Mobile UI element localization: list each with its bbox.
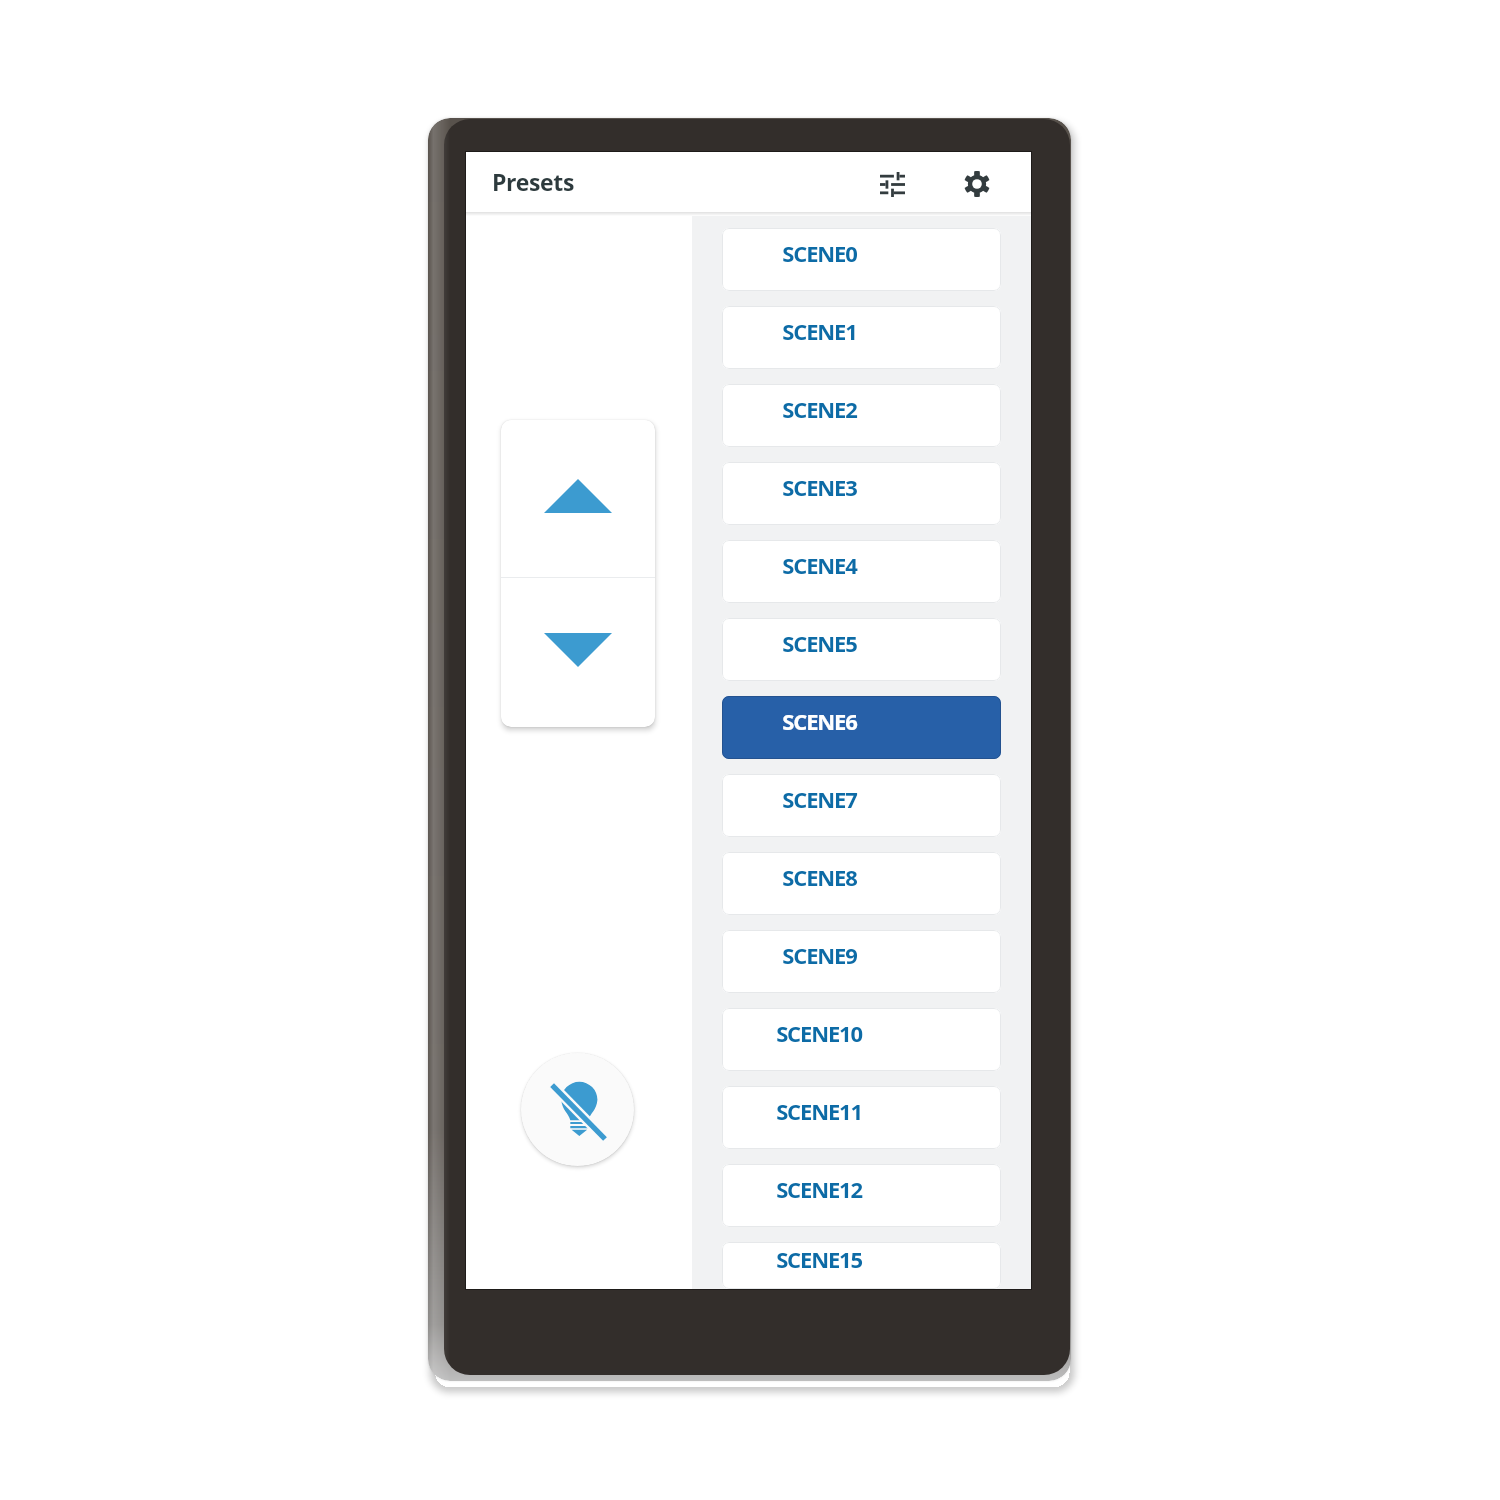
staticText: SCENE5 — [782, 628, 857, 658]
staticText: SCENE3 — [782, 472, 857, 502]
button[interactable]: Next preset — [501, 578, 655, 727]
button[interactable]: SCENE8 — [722, 852, 1001, 915]
staticText: Presets — [492, 166, 575, 197]
button[interactable]: SCENE4 — [722, 540, 1001, 603]
button[interactable]: SCENE12 — [722, 1164, 1001, 1227]
button[interactable]: SCENE7 — [722, 774, 1001, 837]
button[interactable]: SCENE10 — [722, 1008, 1001, 1071]
staticText: SCENE6 — [782, 706, 857, 736]
staticText: SCENE11 — [776, 1096, 862, 1126]
staticText: SCENE7 — [782, 784, 857, 814]
staticText: SCENE0 — [782, 238, 857, 268]
staticText: SCENE12 — [776, 1174, 862, 1204]
staticText: SCENE15 — [776, 1244, 862, 1274]
button[interactable]: Tune — [864, 156, 920, 212]
button[interactable]: Lights off — [521, 1053, 634, 1166]
staticText: SCENE4 — [782, 550, 857, 580]
button[interactable]: Settings — [949, 156, 1005, 212]
button[interactable]: SCENE11 — [722, 1086, 1001, 1149]
button[interactable]: Previous preset — [501, 420, 655, 577]
staticText: SCENE8 — [782, 862, 857, 892]
button[interactable]: SCENE5 — [722, 618, 1001, 681]
staticText: SCENE9 — [782, 940, 857, 970]
button[interactable]: SCENE0 — [722, 228, 1001, 291]
staticText: SCENE2 — [782, 394, 857, 424]
button[interactable]: SCENE9 — [722, 930, 1001, 993]
staticText: SCENE10 — [776, 1018, 862, 1048]
staticText: SCENE1 — [782, 316, 857, 346]
button[interactable]: SCENE6 — [722, 696, 1001, 759]
button[interactable]: SCENE1 — [722, 306, 1001, 369]
button[interactable]: SCENE15 — [722, 1242, 1001, 1289]
button[interactable]: SCENE3 — [722, 462, 1001, 525]
button[interactable]: SCENE2 — [722, 384, 1001, 447]
